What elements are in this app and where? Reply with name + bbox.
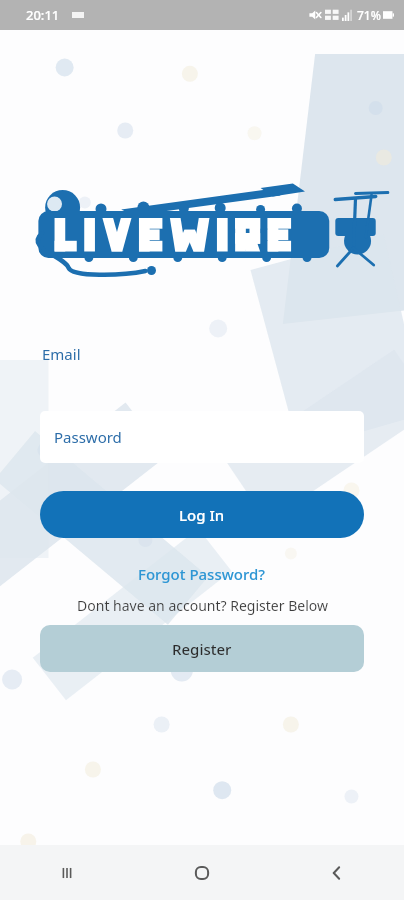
button[interactable]: Email [42,344,81,364]
button[interactable]: Register [40,625,364,672]
staticText: Forgot Password? [138,564,266,584]
staticText: Password [54,427,122,447]
button[interactable]: Log In [40,491,364,538]
staticText: 20:11 [26,6,60,24]
staticText: Log In [179,505,225,525]
button[interactable]: Password [40,411,364,463]
button[interactable]: Back [269,845,404,900]
button[interactable]: Home [134,845,269,900]
staticText: Dont have an account? Register Below [77,596,328,615]
button[interactable]: Recent apps [0,845,134,900]
staticText: 71% [357,7,381,23]
staticText: Register [172,639,232,659]
button[interactable]: Forgot Password? [132,560,272,588]
